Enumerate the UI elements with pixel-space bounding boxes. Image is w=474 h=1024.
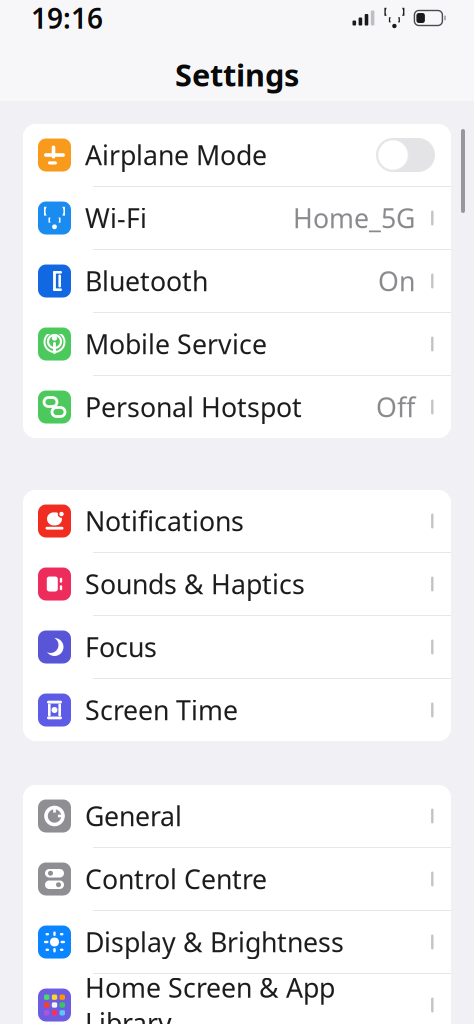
staticText: Sounds & Haptics xyxy=(85,566,305,602)
button[interactable]: Focus xyxy=(23,616,451,678)
staticText: Mobile Service xyxy=(85,326,267,362)
staticText: Personal Hotspot xyxy=(85,389,302,425)
button[interactable]: Airplane Mode xyxy=(23,124,451,186)
button[interactable]: Control Centre xyxy=(23,848,451,910)
staticText: Screen Time xyxy=(85,692,238,728)
staticText: Control Centre xyxy=(85,861,267,897)
staticText: On xyxy=(378,263,415,299)
staticText: 19:16 xyxy=(31,0,103,37)
staticText: Display & Brightness xyxy=(85,924,344,960)
button[interactable]: Wi-Fi xyxy=(23,187,451,249)
staticText: Home_5G xyxy=(293,200,415,236)
button[interactable]: Sounds & Haptics xyxy=(23,553,451,615)
staticText: Notifications xyxy=(85,503,244,539)
button[interactable]: Display & Brightness xyxy=(23,911,451,973)
button[interactable]: Notifications xyxy=(23,490,451,552)
staticText: Wi-Fi xyxy=(85,200,147,236)
staticText: Home Screen & App Library xyxy=(85,970,335,1024)
button[interactable]: Personal Hotspot xyxy=(23,376,451,438)
staticText: Settings xyxy=(175,54,299,95)
button[interactable]: General xyxy=(23,785,451,847)
button[interactable]: Screen Time xyxy=(23,679,451,741)
button[interactable]: Home Screen & App Library xyxy=(23,974,451,1024)
staticText: Airplane Mode xyxy=(85,137,267,173)
button[interactable]: Bluetooth xyxy=(23,250,451,312)
staticText: Bluetooth xyxy=(85,263,208,299)
staticText: Focus xyxy=(85,629,157,665)
staticText: General xyxy=(85,798,182,834)
staticText: Off xyxy=(376,389,415,425)
button[interactable]: Mobile Service xyxy=(23,313,451,375)
